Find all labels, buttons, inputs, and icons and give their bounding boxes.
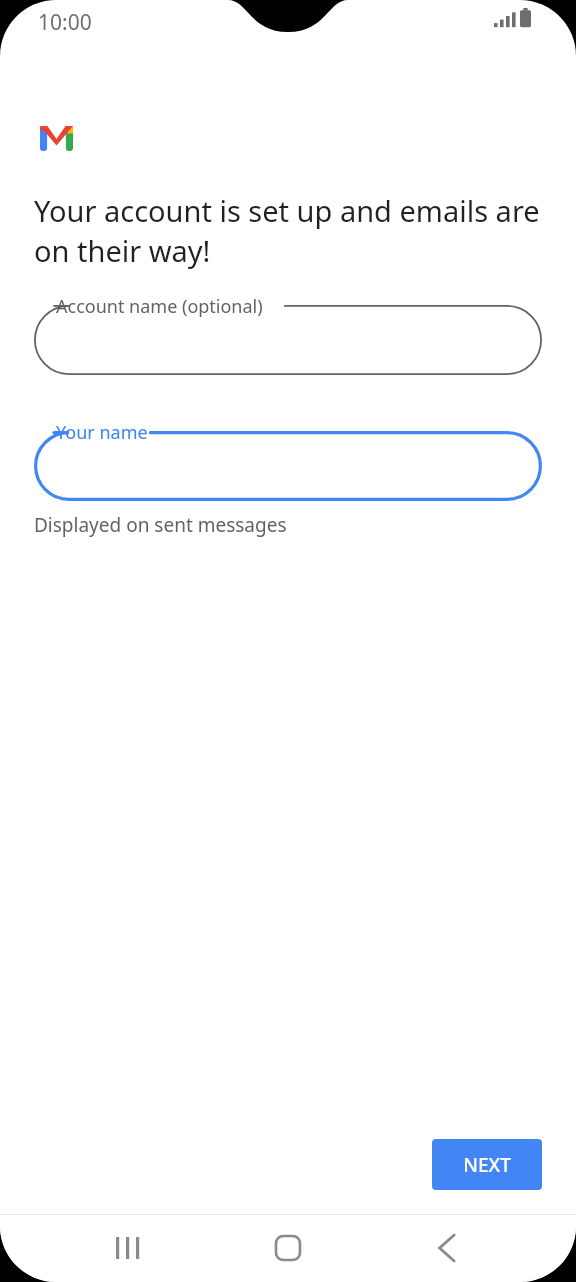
staticText: Displayed on sent messages: [34, 512, 287, 538]
button[interactable]: NEXT: [432, 1139, 542, 1190]
button[interactable]: Back: [408, 1218, 488, 1278]
staticText: 10:00: [38, 8, 92, 37]
button[interactable]: Account name (optional): [34, 293, 542, 375]
button[interactable]: Recent apps: [88, 1218, 168, 1278]
button[interactable]: Your name: [34, 419, 542, 501]
staticText: NEXT: [463, 1152, 511, 1178]
button[interactable]: Home: [248, 1218, 328, 1278]
staticText: Account name (optional): [56, 294, 263, 319]
staticText: Your account is set up and emails are on…: [34, 191, 542, 271]
staticText: Your name: [56, 420, 148, 445]
